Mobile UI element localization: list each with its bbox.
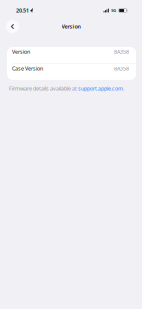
staticText: 8A358 [114,65,129,72]
staticText: support.apple.com [78,85,123,92]
staticText: Version [12,48,30,55]
staticText: . [123,85,124,92]
staticText: 5G [111,8,116,13]
staticText: 20.51 [16,7,29,14]
button[interactable]: Back [4,18,21,35]
staticText: Case Version [12,65,43,72]
staticText: Firmware details available at [9,85,78,92]
staticText: Version [61,23,80,30]
staticText: 8A358 [114,48,129,55]
